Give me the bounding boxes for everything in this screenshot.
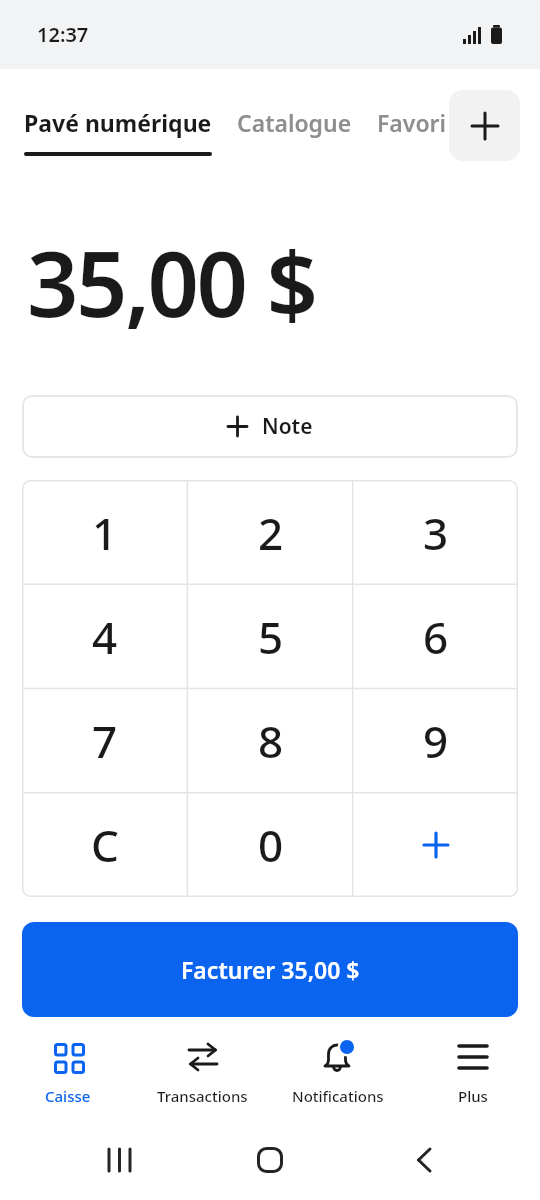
button[interactable]: 0 <box>188 793 353 897</box>
staticText: C <box>91 815 119 875</box>
staticText: Notifications <box>292 1086 384 1106</box>
button[interactable]: Plus <box>405 1040 540 1120</box>
button[interactable]: 6 <box>353 585 518 689</box>
button[interactable]: Catalogue <box>237 107 352 138</box>
button[interactable]: Note <box>22 395 518 458</box>
button[interactable] <box>250 1140 290 1180</box>
staticText: 1 <box>92 503 118 563</box>
button[interactable]: Facturer 35,00 $ <box>22 922 518 1017</box>
staticText: 6 <box>423 607 449 667</box>
staticText: 8 <box>258 711 284 771</box>
button[interactable]: 1 <box>22 480 188 585</box>
staticText: 9 <box>423 711 449 771</box>
button[interactable] <box>99 1140 139 1180</box>
staticText: Caisse <box>45 1086 91 1106</box>
staticText: 35,00 $ <box>27 221 316 344</box>
button[interactable]: C <box>22 793 188 897</box>
staticText: 5 <box>258 607 284 667</box>
staticText: 12:37 <box>37 21 89 48</box>
staticText: Transactions <box>157 1086 248 1106</box>
staticText: 0 <box>258 815 284 875</box>
staticText: 7 <box>92 711 118 771</box>
staticText: Plus <box>458 1086 488 1106</box>
button[interactable]: 2 <box>188 480 353 585</box>
button[interactable] <box>449 90 520 161</box>
button[interactable]: 7 <box>22 689 188 793</box>
button[interactable]: 9 <box>353 689 518 793</box>
button[interactable]: 5 <box>188 585 353 689</box>
button[interactable]: Caisse <box>0 1040 135 1120</box>
button[interactable] <box>353 793 518 897</box>
staticText: Facturer 35,00 $ <box>181 954 360 985</box>
button[interactable]: Notifications <box>270 1040 405 1120</box>
staticText: 3 <box>423 503 449 563</box>
button[interactable] <box>404 1140 444 1180</box>
button[interactable]: 8 <box>188 689 353 793</box>
staticText: Note <box>262 412 313 441</box>
button[interactable]: 3 <box>353 480 518 585</box>
button[interactable]: Pavé numérique <box>24 107 212 156</box>
staticText: Pavé numérique <box>24 107 212 138</box>
staticText: 2 <box>258 503 284 563</box>
button[interactable]: Favoris <box>377 107 458 138</box>
staticText: 4 <box>92 607 118 667</box>
button[interactable]: 4 <box>22 585 188 689</box>
button[interactable]: Transactions <box>135 1040 270 1120</box>
